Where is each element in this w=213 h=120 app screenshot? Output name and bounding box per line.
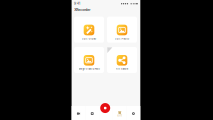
staticText: Merge Video & Photo xyxy=(78,68,99,70)
staticText: Edit Photo xyxy=(114,37,129,40)
button[interactable]: Edit Photo xyxy=(107,17,137,43)
staticText: Gift xyxy=(117,114,122,117)
button[interactable]: Videos xyxy=(72,106,85,120)
staticText: Edit Video xyxy=(81,37,96,40)
staticText: File Transfer xyxy=(115,68,128,70)
staticText: 9:41 xyxy=(74,2,80,5)
button[interactable]: Settings xyxy=(127,106,140,120)
button[interactable]: XRecorder xyxy=(72,7,140,13)
button[interactable]: Record xyxy=(100,103,110,113)
button[interactable]: Edit Video xyxy=(74,17,104,43)
button[interactable]: File Transfer xyxy=(107,47,137,73)
button[interactable]: Rewards xyxy=(113,106,126,120)
button[interactable]: Merge Video & Photo xyxy=(74,47,104,73)
staticText: XRecorder xyxy=(74,8,90,12)
button[interactable]: Photos xyxy=(85,106,99,120)
